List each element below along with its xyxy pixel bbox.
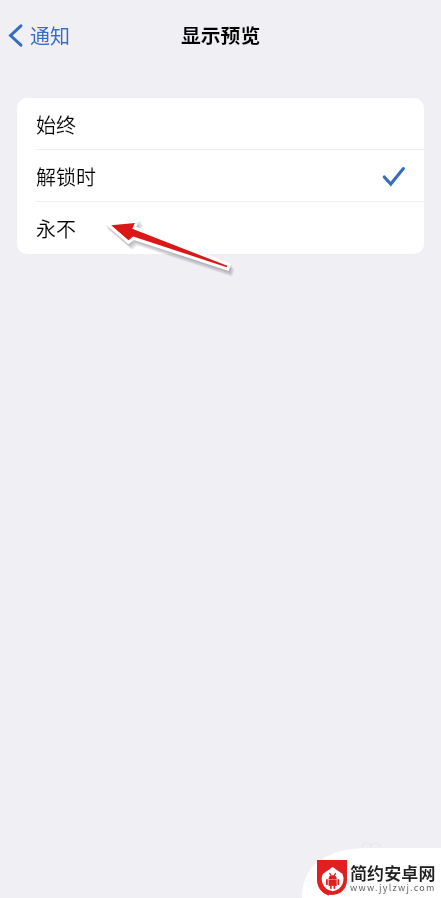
button[interactable]: 返回 通知 (6, 17, 73, 54)
other: Selected (383, 166, 404, 187)
staticText: 始终 (36, 110, 76, 139)
staticText: 显示预览 (181, 20, 261, 49)
staticText: 简约安卓网 (350, 860, 436, 885)
button[interactable]: 永不 (17, 202, 424, 254)
staticText: 解锁时 (36, 162, 96, 191)
button[interactable]: 始终 (17, 98, 424, 150)
button[interactable]: 解锁时 (17, 150, 424, 202)
staticText: 通知 (30, 21, 70, 50)
staticText: 永不 (36, 214, 76, 243)
staticText: www.jylzwj.com (350, 881, 436, 894)
